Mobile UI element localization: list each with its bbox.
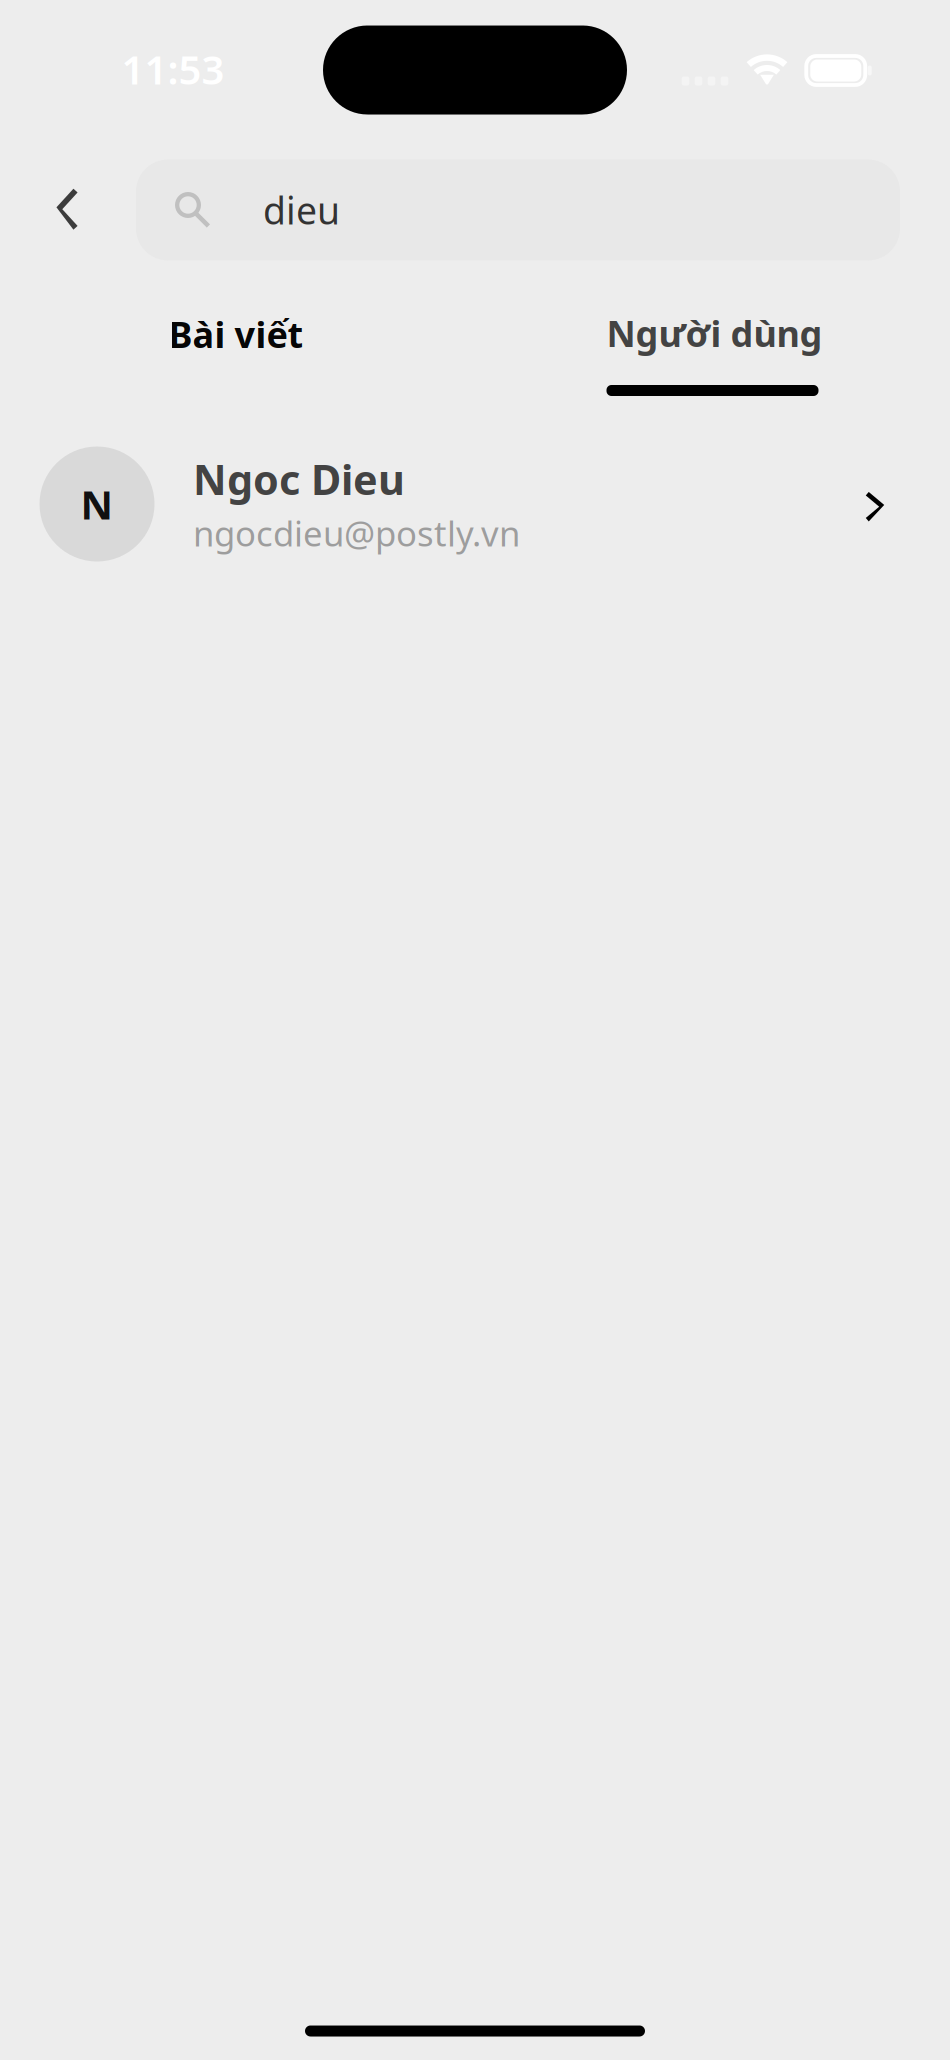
staticText: Bài viết — [168, 310, 303, 358]
button[interactable]: Back — [15, 160, 119, 264]
staticText: N — [80, 477, 113, 530]
staticText: dieu — [263, 185, 340, 235]
button[interactable]: dieu — [136, 159, 900, 260]
button[interactable]: Người dùng — [475, 275, 950, 401]
staticText: Người dùng — [606, 309, 822, 357]
button[interactable]: N — [0, 429, 950, 579]
staticText: 11:53 — [121, 42, 224, 95]
button[interactable]: Bài viết — [0, 276, 475, 402]
staticText: Ngoc Dieu — [193, 452, 405, 506]
staticText: ngocdieu@postly.vn — [193, 510, 520, 556]
